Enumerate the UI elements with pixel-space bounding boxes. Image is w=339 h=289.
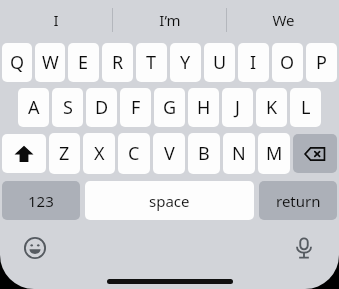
- button[interactable]: C: [118, 133, 150, 174]
- staticText: M: [266, 141, 283, 166]
- staticText: C: [128, 141, 140, 166]
- staticText: A: [28, 95, 40, 120]
- button[interactable]: M: [258, 133, 290, 174]
- staticText: I’m: [159, 10, 181, 30]
- button[interactable]: E: [68, 43, 99, 82]
- staticText: E: [78, 50, 89, 75]
- staticText: H: [197, 95, 211, 120]
- staticText: D: [95, 95, 109, 120]
- staticText: N: [232, 141, 246, 166]
- button[interactable]: Backspace: [293, 134, 337, 173]
- button[interactable]: I’m: [113, 0, 226, 40]
- staticText: space: [149, 191, 190, 211]
- staticText: G: [163, 95, 177, 120]
- staticText: K: [266, 95, 278, 120]
- button[interactable]: X: [83, 133, 115, 174]
- button[interactable]: return: [259, 181, 337, 220]
- staticText: B: [198, 141, 210, 166]
- button[interactable]: K: [256, 88, 287, 127]
- button[interactable]: U: [204, 43, 235, 82]
- staticText: W: [42, 50, 59, 75]
- button[interactable]: N: [223, 133, 255, 174]
- staticText: J: [235, 95, 240, 120]
- button[interactable]: F: [120, 88, 151, 127]
- button[interactable]: space: [85, 181, 254, 220]
- staticText: T: [146, 50, 157, 75]
- staticText: Q: [10, 50, 25, 75]
- button[interactable]: A: [18, 88, 49, 127]
- button[interactable]: H: [188, 88, 219, 127]
- staticText: O: [280, 50, 295, 75]
- staticText: P: [316, 50, 327, 75]
- button[interactable]: J: [222, 88, 253, 127]
- button[interactable]: B: [188, 133, 220, 174]
- button[interactable]: S: [52, 88, 83, 127]
- staticText: I: [53, 10, 59, 30]
- staticText: We: [272, 10, 295, 30]
- button[interactable]: D: [86, 88, 117, 127]
- button[interactable]: Shift: [2, 134, 46, 173]
- button[interactable]: V: [153, 133, 185, 174]
- staticText: R: [112, 50, 124, 75]
- button[interactable]: O: [272, 43, 303, 82]
- button[interactable]: G: [154, 88, 185, 127]
- staticText: Z: [59, 141, 70, 166]
- button[interactable]: We: [227, 0, 339, 40]
- staticText: X: [94, 141, 105, 166]
- button[interactable]: Q: [2, 43, 32, 82]
- button[interactable]: Dictation: [287, 231, 321, 265]
- button[interactable]: R: [102, 43, 133, 82]
- button[interactable]: Z: [49, 133, 80, 174]
- staticText: V: [164, 141, 175, 166]
- staticText: L: [301, 95, 311, 120]
- staticText: 123: [28, 191, 54, 211]
- button[interactable]: L: [290, 88, 321, 127]
- button[interactable]: W: [35, 43, 65, 82]
- staticText: return: [276, 191, 321, 211]
- button[interactable]: I: [0, 0, 112, 40]
- button[interactable]: Emoji keyboard: [18, 231, 52, 265]
- staticText: U: [213, 50, 227, 75]
- button[interactable]: Y: [170, 43, 201, 82]
- button[interactable]: 123: [2, 181, 80, 220]
- button[interactable]: P: [306, 43, 337, 82]
- button[interactable]: T: [136, 43, 167, 82]
- staticText: I: [250, 50, 257, 75]
- staticText: F: [131, 95, 141, 120]
- staticText: Y: [180, 50, 191, 75]
- staticText: S: [63, 95, 73, 120]
- button[interactable]: I: [238, 43, 269, 82]
